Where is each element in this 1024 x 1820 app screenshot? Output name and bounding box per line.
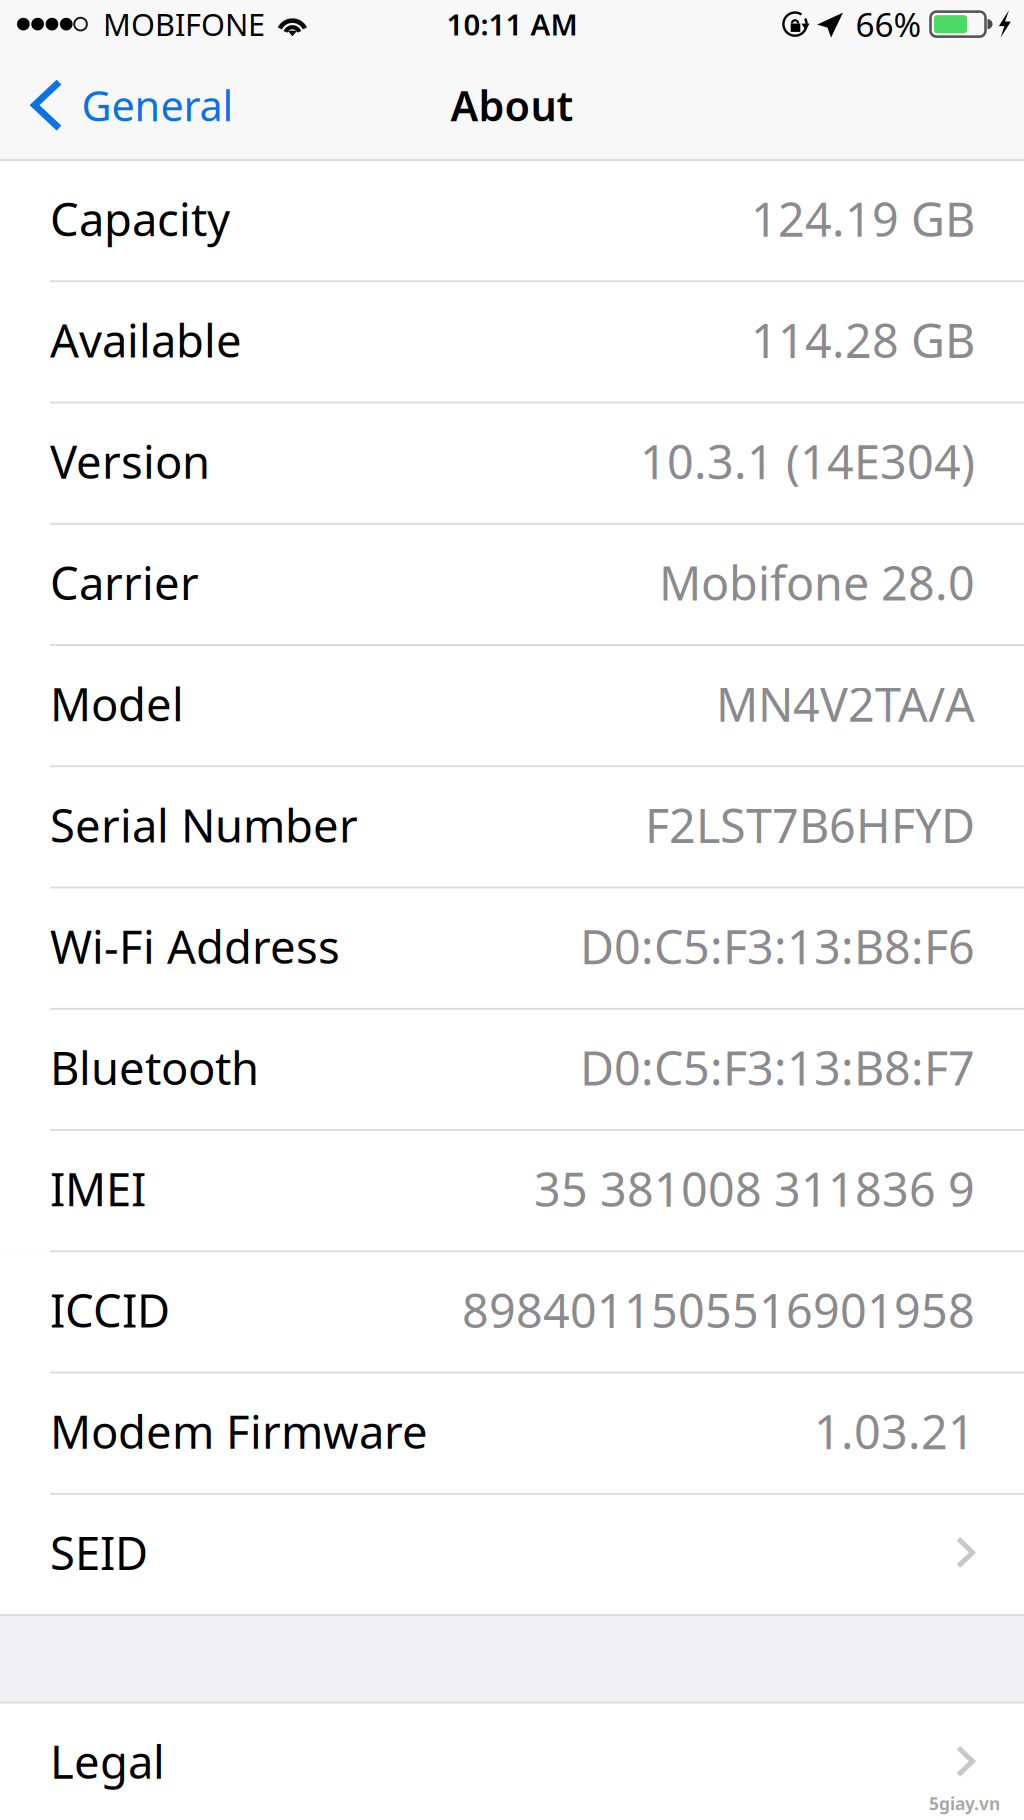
staticText: Bluetooth [50, 1037, 259, 1098]
button[interactable]: IMEI [0, 1131, 1024, 1252]
staticText: F2LST7B6HFYD [645, 794, 975, 856]
staticText: D0:C5:F3:13:B8:F6 [580, 915, 975, 977]
button[interactable]: Version [0, 404, 1024, 525]
staticText: Mobifone 28.0 [659, 551, 975, 613]
button[interactable]: Carrier [0, 525, 1024, 646]
button[interactable]: SEID [0, 1495, 1024, 1616]
button[interactable]: Modem Firmware [0, 1374, 1024, 1495]
staticText: IMEI [50, 1159, 146, 1219]
staticText: Capacity [50, 189, 230, 249]
staticText: Modem Firmware [50, 1401, 428, 1461]
button[interactable]: Bluetooth [0, 1010, 1024, 1131]
button[interactable]: Legal [0, 1704, 1024, 1820]
staticText: 5giay.vn [929, 1792, 1000, 1815]
staticText: Legal [50, 1731, 165, 1791]
staticText: General [81, 78, 233, 133]
staticText: 124.19 GB [751, 188, 975, 250]
button[interactable]: General [0, 49, 249, 161]
button[interactable]: ICCID [0, 1252, 1024, 1374]
staticText: Carrier [50, 552, 199, 613]
staticText: Serial Number [50, 795, 358, 855]
staticText: Version [50, 431, 210, 491]
button[interactable]: Wi-Fi Address [0, 889, 1024, 1010]
staticText: 1.03.21 [814, 1400, 975, 1462]
staticText: SEID [50, 1522, 148, 1583]
staticText: 35 381008 311836 9 [534, 1158, 975, 1220]
staticText: Wi-Fi Address [50, 916, 340, 976]
staticText: 10:11 AM [446, 5, 577, 44]
staticText: 8984011505516901958 [462, 1279, 975, 1341]
button[interactable]: Available [0, 282, 1024, 404]
staticText: Model [50, 674, 184, 734]
staticText: MOBIFONE [87, 4, 265, 44]
staticText: ICCID [50, 1280, 170, 1340]
staticText: 114.28 GB [751, 309, 975, 371]
staticText: MN4V2TA/A [716, 673, 975, 735]
staticText: 10.3.1 (14E304) [640, 430, 975, 492]
button[interactable]: Serial Number [0, 767, 1024, 889]
button[interactable]: Model [0, 646, 1024, 767]
staticText: D0:C5:F3:13:B8:F7 [580, 1036, 975, 1098]
staticText: Available [50, 310, 242, 370]
staticText: About [450, 78, 573, 133]
button[interactable]: Capacity [0, 161, 1024, 282]
staticText: 66% [855, 2, 930, 46]
